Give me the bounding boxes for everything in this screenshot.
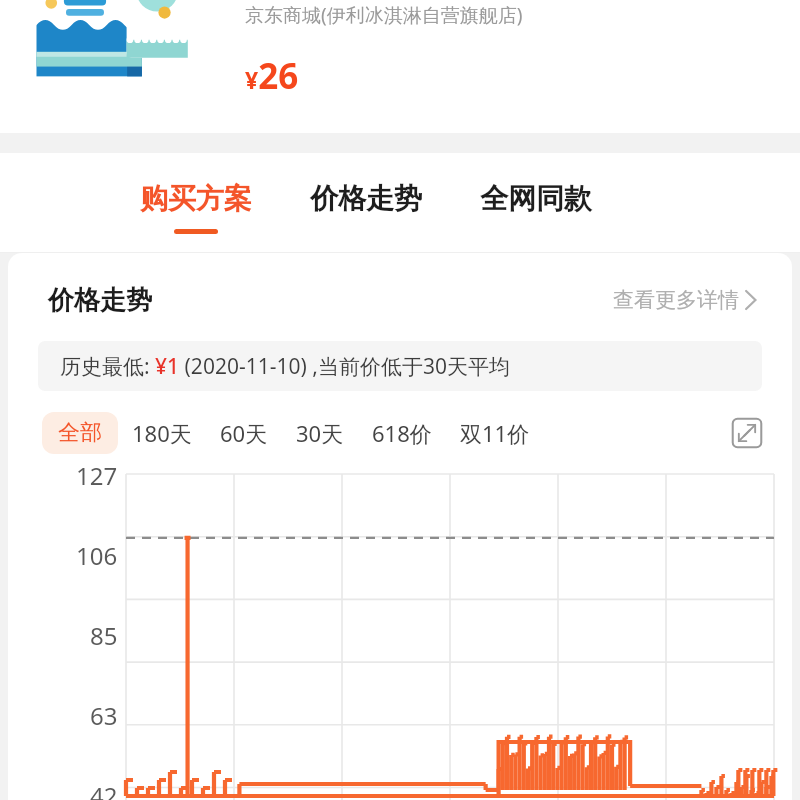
staticText: 全网同款 — [480, 181, 592, 216]
staticText: 63 — [90, 699, 118, 732]
staticText: 42 — [90, 779, 118, 800]
button[interactable]: 全部 — [42, 412, 118, 454]
staticText: 购买方案 — [140, 181, 252, 216]
staticText: 180天 — [132, 418, 192, 448]
staticText: 价格走势 — [310, 181, 422, 216]
button[interactable]: 全网同款 — [480, 181, 592, 229]
button[interactable]: 60天 — [206, 411, 282, 455]
staticText: 查看更多详情 — [613, 287, 739, 313]
staticText: 全部 — [58, 419, 102, 447]
staticText: 618价 — [372, 418, 432, 448]
staticText: 京东商城(伊利冰淇淋自营旗舰店) — [245, 2, 523, 28]
staticText: 历史最低: ¥1 (2020-11-10) ,当前价低于30天平均 — [60, 352, 510, 381]
staticText: 106 — [76, 539, 118, 572]
button[interactable]: Expand chart — [728, 414, 766, 452]
button[interactable]: 购买方案 — [140, 181, 252, 234]
staticText: 85 — [90, 619, 118, 652]
staticText: 30天 — [296, 418, 344, 448]
staticText: 价格走势 — [48, 284, 152, 317]
button[interactable]: 180天 — [118, 411, 206, 455]
staticText: 127 — [76, 459, 118, 492]
button[interactable]: 30天 — [282, 411, 358, 455]
button[interactable]: 双11价 — [446, 411, 544, 455]
staticText: 60天 — [220, 418, 268, 448]
button[interactable]: 价格走势 — [310, 181, 422, 229]
button[interactable]: 查看更多详情 — [607, 281, 762, 319]
button[interactable]: 618价 — [358, 411, 446, 455]
staticText: ¥26 — [245, 52, 299, 100]
button[interactable]: 历史最低: ¥1 (2020-11-10) ,当前价低于30天平均 — [38, 341, 762, 391]
staticText: 双11价 — [460, 418, 530, 448]
